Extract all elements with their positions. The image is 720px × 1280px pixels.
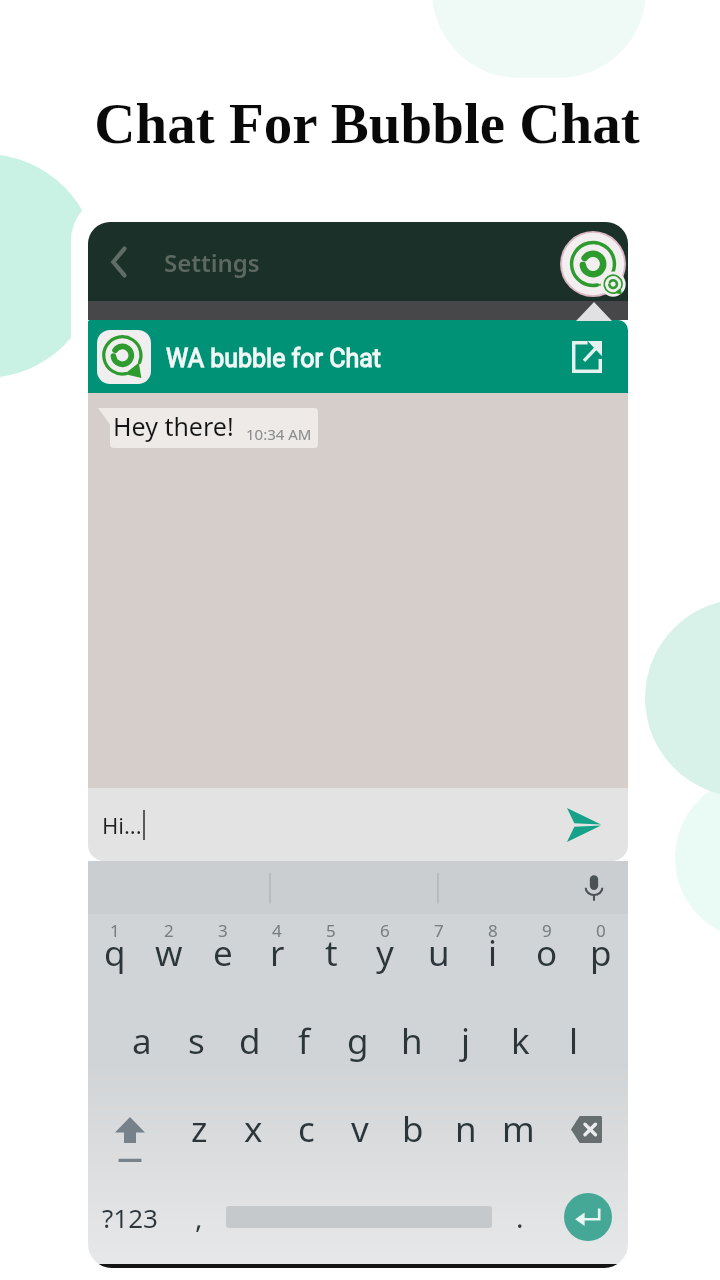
staticText: t [325,929,338,977]
button[interactable]: z [172,1100,226,1162]
button[interactable]: s [169,1016,223,1066]
button[interactable]: 1 [88,919,142,977]
button[interactable]: c [280,1100,333,1162]
button[interactable]: g [331,1016,385,1066]
staticText: f [298,1017,311,1065]
staticText: , [195,1198,203,1236]
button[interactable]: 8 [466,919,520,977]
button[interactable]: j [439,1016,493,1066]
button[interactable]: . [492,1187,548,1247]
button[interactable]: 4 [250,919,304,977]
button[interactable]: Voice input [578,872,610,904]
staticText: n [455,1105,477,1153]
button[interactable]: WA bubble for Chat [88,320,628,393]
staticText: y [376,929,394,977]
staticText: q [104,929,126,977]
button[interactable]: h [385,1016,439,1066]
button[interactable]: x [226,1100,280,1162]
button[interactable]: Enter [548,1187,628,1247]
button[interactable]: b [386,1100,439,1162]
staticText: a [132,1017,152,1065]
button[interactable]: d [223,1016,277,1066]
button[interactable]: k [493,1016,547,1066]
staticText: 10:34 AM [246,424,312,444]
staticText: 6 [380,919,390,942]
staticText: r [270,929,285,977]
button[interactable]: n [439,1100,492,1162]
staticText: v [351,1105,369,1153]
button[interactable]: 5 [304,919,358,977]
button[interactable]: Open in app [572,341,602,373]
staticText: 2 [164,919,174,942]
staticText: p [590,929,612,977]
staticText: Settings [164,246,260,279]
staticText: Chat For Bubble Chat [7,92,720,155]
button[interactable]: f [277,1016,331,1066]
button[interactable]: 7 [412,919,466,977]
staticText: o [536,929,558,977]
staticText: 0 [596,919,606,942]
button[interactable]: Space [226,1187,492,1247]
staticText: c [298,1105,315,1153]
staticText: x [244,1105,263,1153]
button[interactable]: Back [94,234,150,290]
staticText: ?123 [102,1200,158,1235]
staticText: k [511,1017,530,1065]
button[interactable]: l [547,1016,601,1066]
staticText: WA bubble for Chat [166,344,382,373]
staticText: l [569,1017,579,1065]
staticText: s [188,1017,205,1065]
staticText: d [239,1017,261,1065]
staticText: 5 [326,919,336,942]
button[interactable]: 2 [142,919,196,977]
staticText: g [347,1017,369,1065]
staticText: e [213,929,233,977]
button[interactable]: Backspace [545,1100,628,1162]
button[interactable]: , [172,1187,226,1247]
staticText: Hi... [102,810,142,840]
staticText: Hey there! [113,409,234,443]
staticText: u [428,929,450,977]
button[interactable]: a [115,1016,169,1066]
staticText: . [516,1198,524,1236]
button[interactable]: m [492,1100,545,1162]
button[interactable]: 6 [358,919,412,977]
staticText: 9 [542,919,552,942]
staticText: b [402,1105,424,1153]
button[interactable]: Send [561,802,607,848]
button[interactable]: Shift [88,1100,172,1162]
staticText: 8 [488,919,498,942]
button[interactable]: 0 [574,919,628,977]
staticText: j [461,1017,471,1065]
staticText: w [155,929,183,977]
button[interactable]: ?123 [88,1187,172,1247]
staticText: z [191,1105,208,1153]
staticText: 3 [218,919,228,942]
staticText: m [502,1105,535,1153]
staticText: 4 [272,919,282,942]
staticText: 7 [434,919,444,942]
staticText: 1 [110,919,120,942]
button[interactable]: v [333,1100,386,1162]
staticText: i [488,929,498,977]
staticText: h [401,1017,423,1065]
button[interactable]: 3 [196,919,250,977]
button[interactable]: 9 [520,919,574,977]
button[interactable]: Floating chat bubble [560,231,626,297]
